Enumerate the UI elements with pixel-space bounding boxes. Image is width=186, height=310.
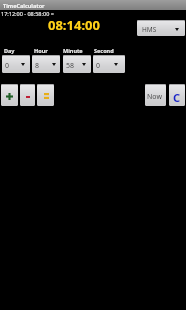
staticText: C bbox=[173, 90, 181, 105]
staticText: 08:14:00 bbox=[48, 16, 100, 34]
staticText: 8 bbox=[35, 61, 40, 71]
button[interactable]: Time format bbox=[137, 20, 185, 36]
staticText: 0 bbox=[5, 61, 10, 71]
button[interactable]: Day value bbox=[2, 55, 30, 73]
button[interactable]: Add bbox=[1, 84, 18, 106]
staticText: 17:12:00 - 08:58:00 = bbox=[1, 10, 54, 17]
staticText: 58 bbox=[66, 61, 75, 71]
staticText: 0 bbox=[96, 61, 101, 71]
staticText: Second bbox=[94, 47, 114, 54]
staticText: Day bbox=[4, 47, 15, 54]
button[interactable]: Second value bbox=[93, 55, 125, 73]
button[interactable]: Subtract bbox=[20, 84, 35, 106]
button[interactable]: Clear bbox=[169, 84, 185, 106]
staticText: TimeCalculator bbox=[3, 2, 45, 9]
button[interactable]: Now bbox=[145, 84, 166, 106]
button[interactable]: Minute value bbox=[63, 55, 91, 73]
staticText: HMS bbox=[142, 25, 157, 34]
staticText: Now bbox=[147, 92, 162, 102]
button[interactable]: Hour value bbox=[32, 55, 60, 73]
staticText: Hour bbox=[34, 47, 48, 54]
staticText: Minute bbox=[63, 47, 83, 54]
button[interactable]: Equals bbox=[37, 84, 54, 106]
